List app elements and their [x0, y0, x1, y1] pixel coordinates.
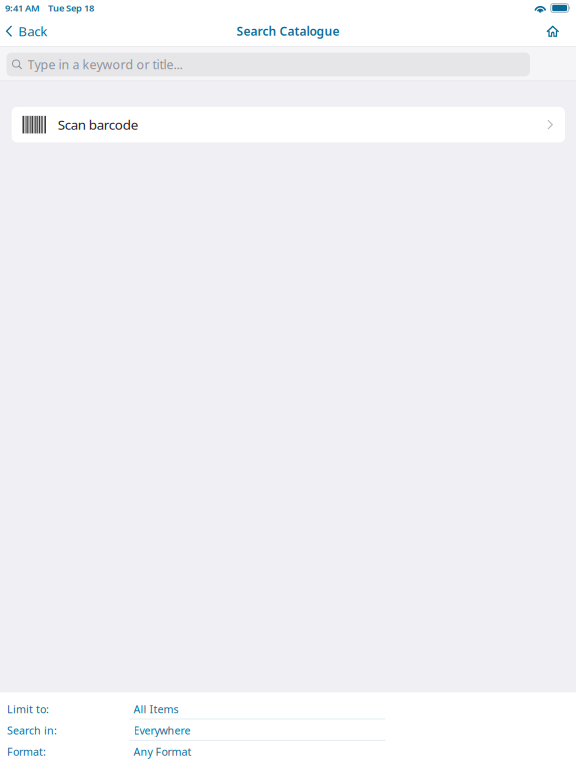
- button[interactable]: Scan barcode: [12, 107, 565, 142]
- button[interactable]: Back: [0, 16, 55, 46]
- button[interactable]: Type in a keyword or title...: [6, 53, 530, 76]
- staticText: Search in:: [7, 723, 57, 737]
- staticText: Type in a keyword or title...: [27, 56, 182, 73]
- staticText: Any Format: [133, 744, 191, 759]
- staticText: Everywhere: [133, 723, 190, 737]
- staticText: All Items: [133, 702, 178, 716]
- staticText: Format:: [7, 744, 46, 759]
- button[interactable]: Limit to:: [0, 698, 576, 719]
- staticText: Limit to:: [7, 702, 49, 716]
- staticText: 9:41 AM: [5, 2, 40, 14]
- button[interactable]: Home: [534, 16, 576, 46]
- button[interactable]: Format:: [0, 740, 576, 762]
- staticText: Scan barcode: [58, 116, 139, 133]
- staticText: Back: [18, 22, 47, 40]
- staticText: Search Catalogue: [236, 23, 339, 39]
- staticText: Tue Sep 18: [48, 2, 94, 14]
- button[interactable]: Search in:: [0, 719, 576, 740]
